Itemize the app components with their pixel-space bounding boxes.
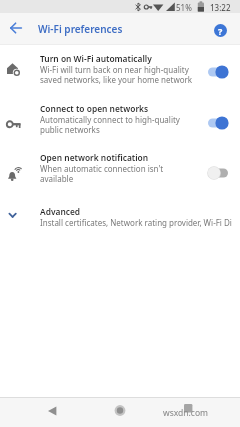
staticText: Turn on Wi-Fi automatically — [40, 53, 152, 64]
button[interactable]: Advanced — [0, 193, 240, 237]
staticText: Wi-Fi will turn back on near high-qualit… — [40, 64, 193, 85]
button[interactable] — [4, 16, 28, 40]
button[interactable] — [44, 402, 62, 420]
staticText: Install certificates, Network rating pro… — [40, 217, 232, 228]
button[interactable] — [206, 65, 230, 79]
staticText: Automatically connect to high-quality pu… — [40, 114, 180, 135]
staticText: Open network notification — [40, 152, 149, 163]
button[interactable]: Open network notification — [0, 144, 240, 193]
button[interactable] — [111, 401, 129, 419]
staticText: Advanced — [40, 206, 81, 217]
staticText: ? — [218, 25, 223, 37]
staticText: When automatic connection isn't availabl… — [40, 163, 164, 184]
staticText: Connect to open networks — [40, 103, 149, 114]
button[interactable]: ? — [212, 22, 228, 38]
staticText: 13:22 — [210, 2, 231, 13]
staticText: Wi-Fi preferences — [38, 22, 123, 36]
button[interactable] — [206, 116, 230, 130]
button[interactable] — [206, 166, 230, 180]
staticText: wsxdn.com — [163, 407, 209, 419]
staticText: 51% — [176, 2, 192, 13]
button[interactable] — [180, 400, 196, 416]
button[interactable]: Turn on Wi-Fi automatically — [0, 45, 240, 93]
button[interactable]: Connect to open networks — [0, 93, 240, 144]
